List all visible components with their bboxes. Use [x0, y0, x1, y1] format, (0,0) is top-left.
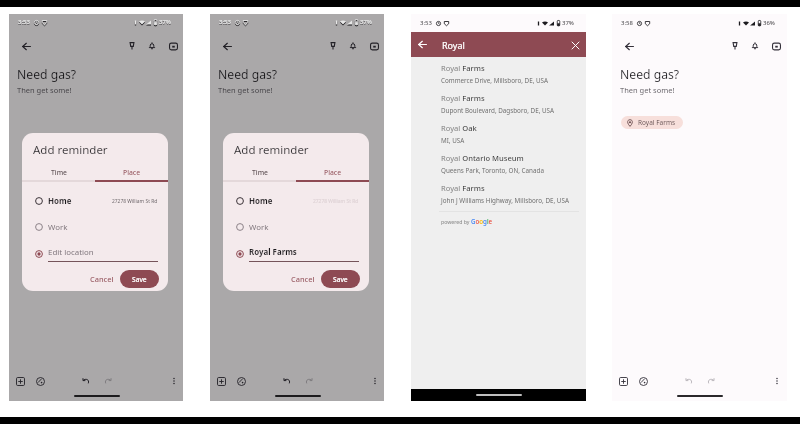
- staticText: Queens Park, Toronto, ON, Canada: [441, 166, 544, 175]
- staticText: 3:53: [18, 18, 30, 26]
- staticText: Need gas?: [218, 66, 278, 83]
- button[interactable]: Back: [218, 37, 236, 55]
- staticText: 37%: [360, 18, 372, 26]
- staticText: 37%: [159, 19, 171, 27]
- button[interactable]: More options: [165, 372, 183, 390]
- staticText: MI, USA: [441, 136, 465, 145]
- staticText: Royal: [442, 39, 465, 51]
- button[interactable]: Remind me: [344, 37, 362, 55]
- staticText: 37%: [360, 19, 372, 27]
- staticText: Royal Farms: [441, 183, 485, 193]
- staticText: Royal Farms: [249, 247, 297, 258]
- button[interactable]: Redo: [300, 372, 318, 390]
- staticText: Then get some!: [17, 85, 72, 95]
- button[interactable]: More options: [366, 372, 384, 390]
- button[interactable]: Cancel: [286, 270, 320, 288]
- button[interactable]: More options: [768, 372, 786, 390]
- button[interactable]: Pin: [726, 37, 744, 55]
- button[interactable]: Home: [22, 193, 168, 209]
- button[interactable]: Royal Farms: [411, 89, 586, 119]
- staticText: Royal Farms: [441, 63, 485, 73]
- staticText: Save: [132, 275, 147, 284]
- button[interactable]: Archive: [164, 37, 182, 55]
- staticText: Edit location: [48, 247, 94, 258]
- button[interactable]: Remind me: [143, 37, 161, 55]
- staticText: 3:58: [621, 19, 633, 27]
- staticText: Royal Ontario Museum: [441, 153, 524, 163]
- button[interactable]: Time: [223, 164, 296, 180]
- staticText: Commerce Drive, Millsboro, DE, USA: [441, 76, 549, 85]
- button[interactable]: Archive: [767, 37, 785, 55]
- staticText: 3:53: [18, 19, 30, 27]
- button[interactable]: Add: [614, 372, 632, 390]
- button[interactable]: Clear search: [567, 37, 583, 53]
- staticText: Home: [249, 196, 273, 207]
- button[interactable]: Undo: [77, 372, 95, 390]
- staticText: Add reminder: [234, 142, 309, 158]
- button[interactable]: Undo: [278, 372, 296, 390]
- button[interactable]: Save: [120, 270, 159, 288]
- staticText: Place: [324, 168, 342, 177]
- staticText: Home: [48, 196, 72, 207]
- staticText: 27278 William St Rd: [112, 198, 158, 205]
- staticText: Time: [252, 168, 268, 177]
- button[interactable]: Redo: [99, 372, 117, 390]
- button[interactable]: Change colour: [634, 372, 652, 390]
- button[interactable]: Work: [223, 219, 369, 235]
- staticText: Work: [48, 222, 68, 233]
- staticText: Royal Farms: [638, 118, 676, 127]
- button[interactable]: Royal Ontario Museum: [411, 149, 586, 179]
- button[interactable]: Undo: [680, 372, 698, 390]
- button[interactable]: Add: [11, 372, 29, 390]
- button[interactable]: Save: [321, 270, 360, 288]
- staticText: Time: [51, 168, 67, 177]
- staticText: 36%: [763, 19, 775, 27]
- staticText: Add reminder: [33, 142, 108, 158]
- button[interactable]: Change colour: [31, 372, 49, 390]
- staticText: 3:53: [219, 19, 231, 27]
- button[interactable]: Royal Farms: [411, 179, 586, 209]
- staticText: Save: [333, 275, 348, 284]
- button[interactable]: Home: [223, 193, 369, 209]
- staticText: John J Williams Highway, Millsboro, DE, …: [441, 196, 569, 205]
- staticText: Place: [123, 168, 141, 177]
- staticText: 27278 William St Rd: [313, 198, 359, 205]
- button[interactable]: Change colour: [232, 372, 250, 390]
- staticText: 3:53: [420, 19, 432, 27]
- button[interactable]: Archive: [365, 37, 383, 55]
- staticText: Need gas?: [17, 66, 77, 83]
- staticText: 3:53: [219, 18, 231, 26]
- staticText: Cancel: [291, 274, 315, 284]
- staticText: Need gas?: [620, 66, 680, 83]
- staticText: Royal Farms: [441, 93, 485, 103]
- button[interactable]: Pin: [324, 37, 342, 55]
- button[interactable]: Work: [22, 219, 168, 235]
- staticText: Then get some!: [620, 85, 675, 95]
- button[interactable]: Royal Oak: [411, 119, 586, 149]
- button[interactable]: Back: [17, 37, 35, 55]
- staticText: 37%: [159, 18, 171, 26]
- button[interactable]: Remind me: [746, 37, 764, 55]
- button[interactable]: Back: [414, 32, 430, 57]
- button[interactable]: Cancel: [85, 270, 119, 288]
- staticText: 37%: [562, 19, 574, 27]
- staticText: Cancel: [90, 274, 114, 284]
- button[interactable]: Place: [95, 164, 168, 180]
- button[interactable]: Back: [620, 37, 638, 55]
- button[interactable]: Time: [22, 164, 95, 180]
- button[interactable]: Pin: [123, 37, 141, 55]
- staticText: Then get some!: [218, 85, 273, 95]
- button[interactable]: Redo: [702, 372, 720, 390]
- button[interactable]: Add: [212, 372, 230, 390]
- staticText: powered by: [441, 218, 471, 225]
- staticText: Royal Oak: [441, 123, 477, 133]
- staticText: Work: [249, 222, 269, 233]
- button[interactable]: Royal Farms: [621, 116, 683, 129]
- staticText: Google: [471, 217, 493, 225]
- staticText: Dupont Boulevard, Dagsboro, DE, USA: [441, 106, 555, 115]
- button[interactable]: Place: [296, 164, 369, 180]
- button[interactable]: Royal Farms: [411, 59, 586, 89]
